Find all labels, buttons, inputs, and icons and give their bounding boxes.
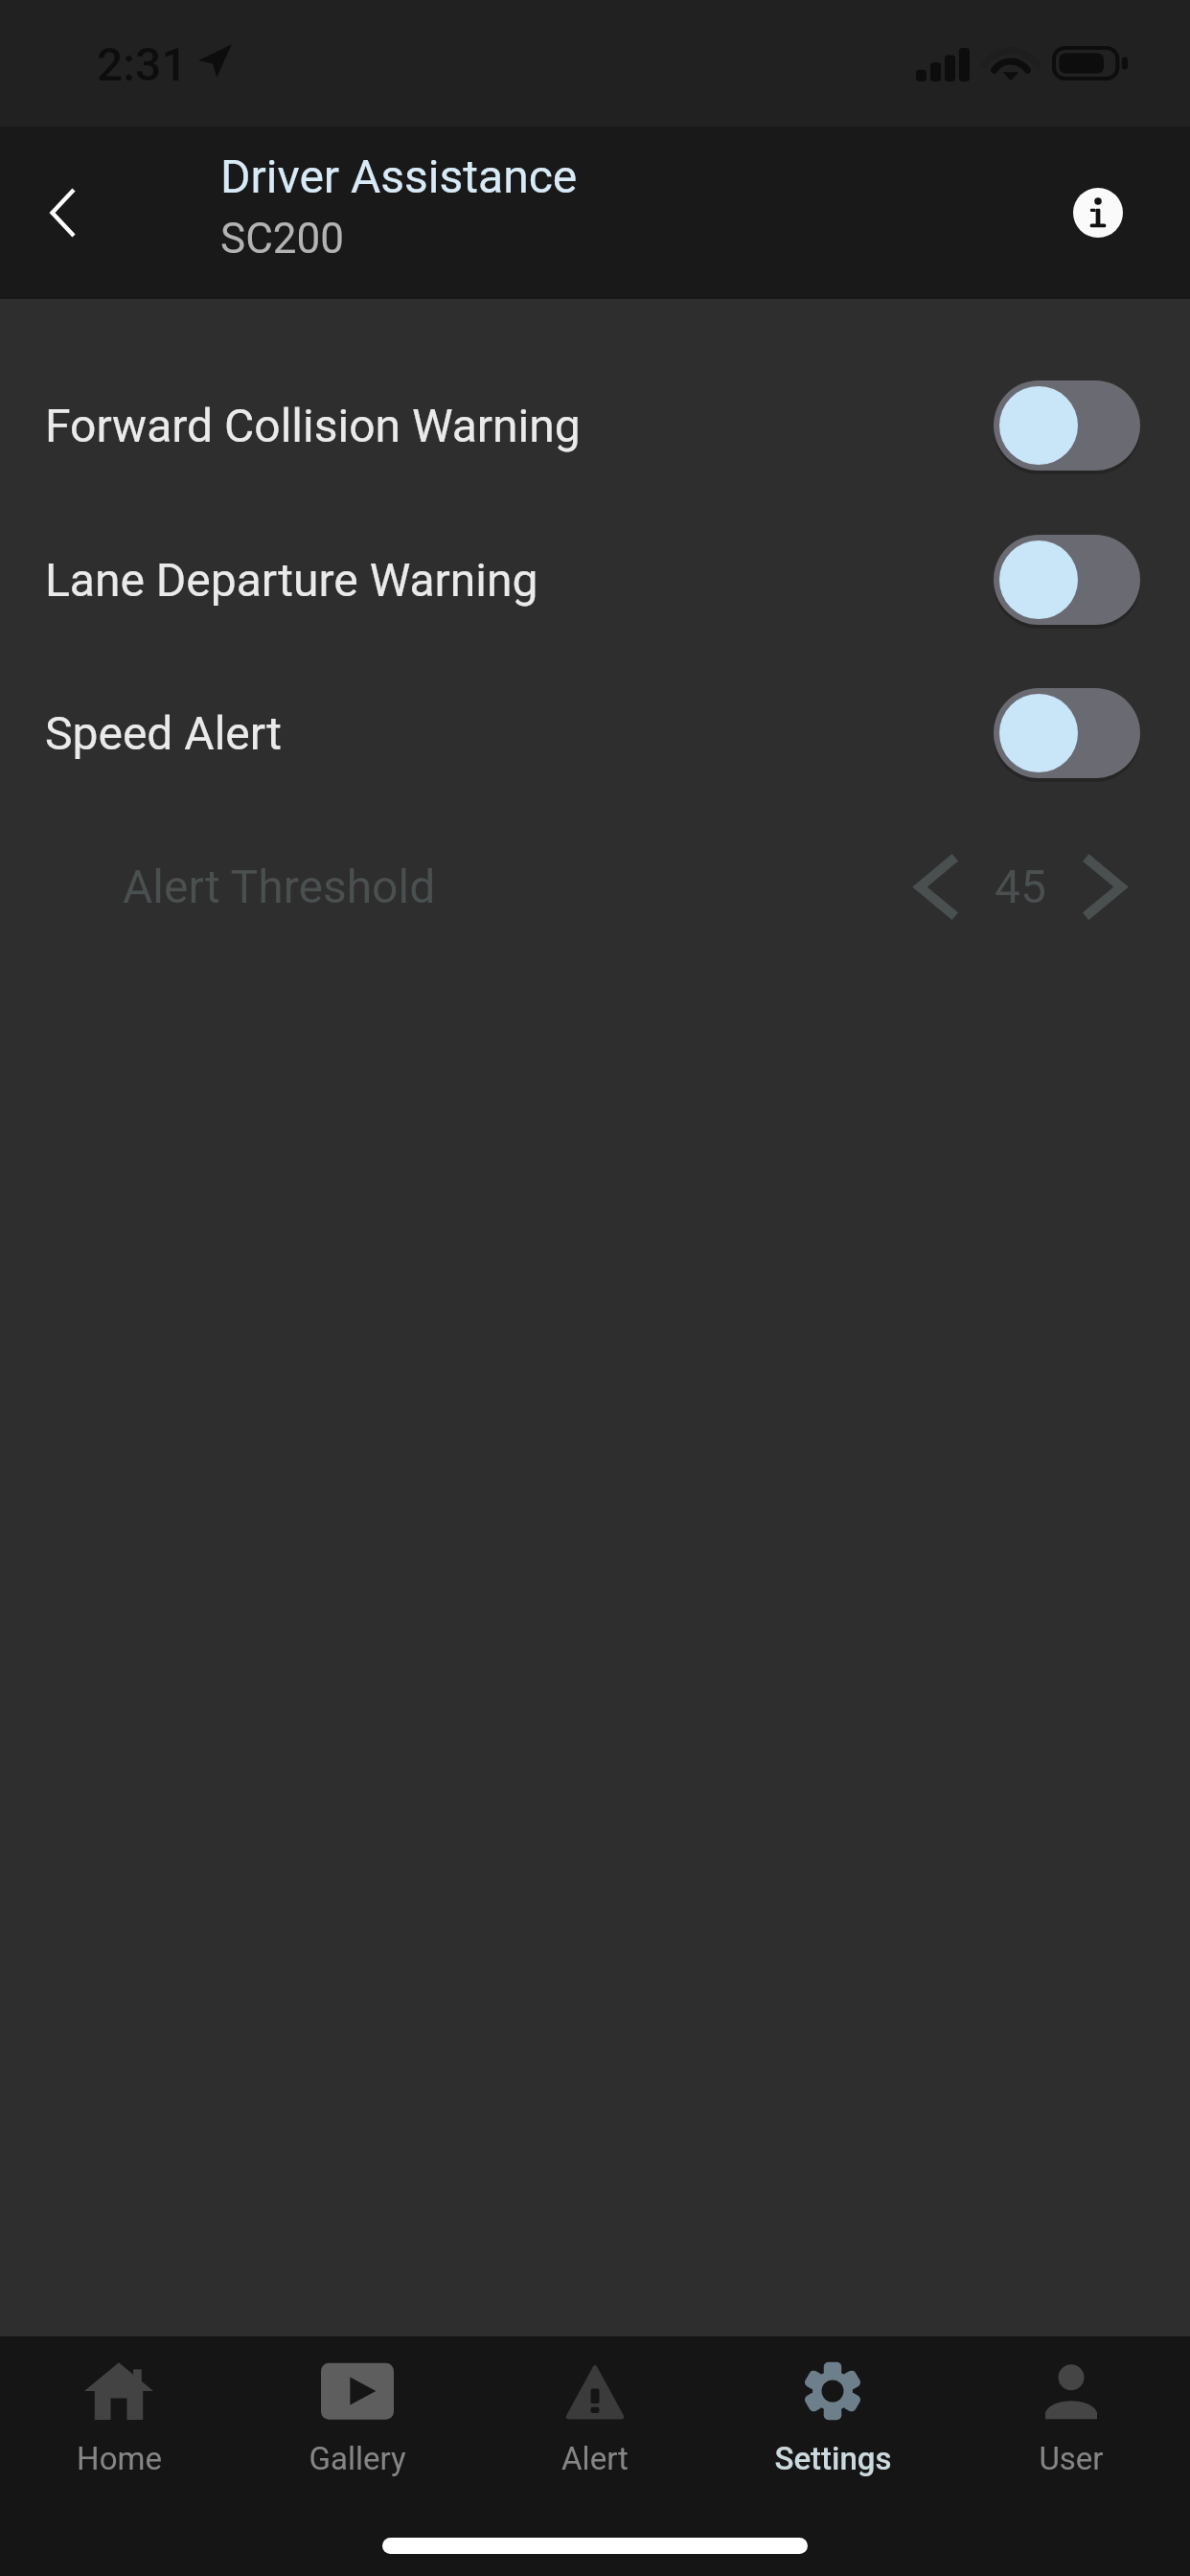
button[interactable]: Speed Alert <box>0 656 1190 810</box>
button[interactable]: Alert Threshold <box>0 810 1190 963</box>
button[interactable]: Lane Departure Warning <box>0 503 1190 656</box>
button[interactable]: Increase alert threshold <box>1064 839 1145 934</box>
staticText: Alert Threshold <box>123 860 436 913</box>
button[interactable]: User <box>952 2336 1190 2490</box>
staticText: Driver Assistance <box>220 149 578 203</box>
staticText: Forward Collision Warning <box>45 399 581 452</box>
button[interactable]: Forward Collision Warning <box>0 349 1190 502</box>
button[interactable]: Decrease alert threshold <box>895 839 975 934</box>
staticText: Gallery <box>309 2440 406 2477</box>
button[interactable]: Gallery <box>239 2336 476 2490</box>
button[interactable]: Alert <box>476 2336 714 2490</box>
staticText: Speed Alert <box>45 706 282 760</box>
button[interactable]: Home <box>0 2336 238 2490</box>
staticText: SC200 <box>220 214 344 264</box>
button[interactable]: Toggle Forward Collision Warning <box>994 380 1140 471</box>
staticText: Home <box>77 2440 162 2477</box>
button[interactable]: Information <box>1057 172 1139 254</box>
staticText: 45 <box>995 860 1046 913</box>
button[interactable]: Toggle Lane Departure Warning <box>994 535 1140 625</box>
staticText: User <box>1039 2440 1104 2477</box>
staticText: Settings <box>774 2440 892 2477</box>
staticText: Lane Departure Warning <box>45 553 538 607</box>
staticText: Alert <box>561 2440 629 2477</box>
staticText: 2:31 <box>97 37 188 91</box>
button[interactable]: Settings <box>714 2336 951 2490</box>
button[interactable]: Toggle Speed Alert <box>994 688 1140 778</box>
button[interactable]: Back <box>11 160 117 265</box>
